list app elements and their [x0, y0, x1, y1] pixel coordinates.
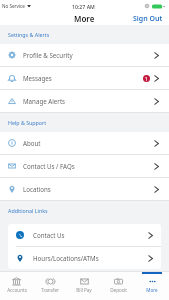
staticText: Hours/Locations/ATMs	[33, 254, 99, 262]
staticText: Help & Support	[8, 119, 47, 126]
staticText: Manage Alerts	[23, 97, 66, 105]
button[interactable]: Locations	[0, 178, 169, 200]
button[interactable]: Hours/Locations/ATMs	[8, 247, 161, 269]
staticText: Contact Us	[33, 231, 65, 239]
staticText: More	[74, 13, 95, 24]
staticText: Contact Us / FAQs	[23, 162, 75, 170]
staticText: Bill Pay	[76, 287, 92, 293]
button[interactable]: Deposit	[101, 272, 135, 300]
staticText: 10:27 AM	[72, 3, 95, 10]
staticText: Profile & Security	[23, 51, 73, 59]
staticText: Deposit	[110, 287, 127, 293]
staticText: Accounts	[7, 287, 27, 293]
button[interactable]: Profile & Security	[0, 44, 169, 66]
staticText: Sign Out	[133, 14, 163, 23]
staticText: Additional Links	[8, 207, 48, 214]
staticText: No Service	[2, 3, 25, 9]
button[interactable]: Accounts	[0, 272, 33, 300]
button[interactable]: Contact Us / FAQs	[0, 155, 169, 177]
button[interactable]: Bill Pay	[67, 272, 101, 300]
staticText: Transfer	[41, 287, 59, 293]
button[interactable]: About	[0, 132, 169, 154]
button[interactable]: Messages	[0, 67, 169, 89]
staticText: About	[23, 139, 41, 147]
button[interactable]: Sign Out	[127, 12, 169, 25]
staticText: More	[146, 287, 158, 293]
button[interactable]: Transfer	[33, 272, 67, 300]
staticText: Locations	[23, 185, 51, 193]
staticText: 1	[145, 76, 148, 82]
button[interactable]: More	[135, 272, 169, 300]
staticText: Messages	[23, 74, 52, 82]
button[interactable]: Contact Us	[8, 224, 161, 246]
button[interactable]: Manage Alerts	[0, 90, 169, 112]
staticText: Settings & Alerts	[8, 31, 50, 38]
